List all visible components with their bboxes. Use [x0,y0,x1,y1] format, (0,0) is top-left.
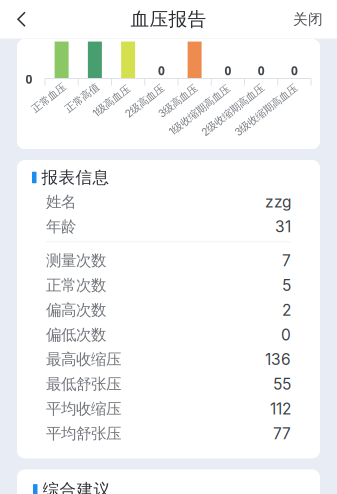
button[interactable]: 关闭 [283,0,333,38]
staticText: 测量次数 [46,251,106,270]
staticText: 正常血压 [29,92,69,104]
staticText: 2级收缩期高血压 [195,104,271,117]
staticText: 血压报告 [130,7,206,31]
staticText: 0 [291,62,298,78]
staticText: 77 [273,424,291,443]
staticText: 关闭 [293,10,323,28]
staticText: 5 [282,276,291,295]
staticText: 最高收缩压 [46,350,121,369]
staticText: 综合建议 [42,479,110,494]
staticText: 正常高值 [62,92,102,104]
staticText: 1级收缩期高血压 [162,104,236,117]
staticText: 0 [224,62,231,78]
staticText: 55 [273,375,291,393]
staticText: 年龄 [46,217,76,236]
staticText: zzg [265,192,291,211]
staticText: 平均舒张压 [46,424,121,443]
staticText: 平均收缩压 [46,399,121,419]
staticText: 0 [258,62,265,78]
staticText: 最低舒张压 [46,374,121,394]
staticText: 136 [265,350,291,369]
staticText: 2级高血压 [122,95,168,107]
staticText: 7 [282,251,291,270]
staticText: 偏高次数 [46,300,106,320]
staticText: 3级高血压 [155,95,201,107]
staticText: 报表信息 [41,167,109,188]
staticText: 112 [270,399,291,418]
staticText: 0 [281,325,291,344]
button[interactable]: Back [4,1,40,38]
staticText: 31 [275,217,291,236]
staticText: 0 [158,62,165,78]
staticText: 姓名 [46,192,76,212]
staticText: 偏低次数 [46,325,106,344]
staticText: 正常次数 [46,276,106,295]
staticText: 3级收缩期高血压 [228,104,304,117]
staticText: 2 [282,301,291,319]
staticText: 1级高血压 [89,95,133,107]
staticText: 0 [25,71,32,87]
